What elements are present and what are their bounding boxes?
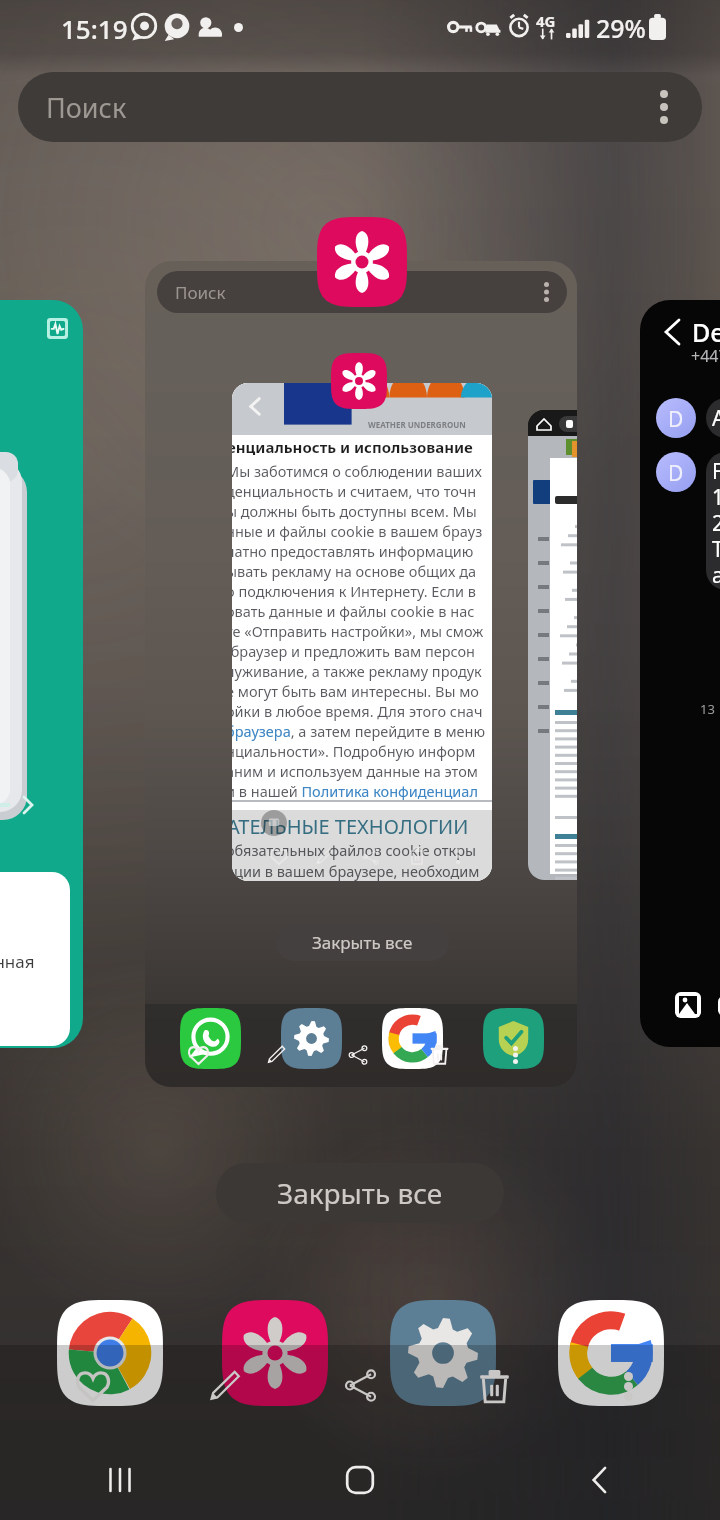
staticText: о подключения к Интернету. Если в (232, 581, 477, 601)
button[interactable]: Recent apps (0, 1440, 240, 1520)
staticText: ойки в любое время. Для этого снач (232, 701, 483, 721)
staticText: ывать рекламу на основе общих да (232, 561, 477, 581)
staticText: At (712, 404, 720, 433)
button[interactable]: Back (480, 1440, 720, 1520)
button[interactable]: More options (644, 87, 684, 127)
staticText: ации в вашем браузере, необходим (232, 861, 480, 881)
button[interactable]: Settings (390, 1300, 496, 1406)
staticText: браузера, а затем перейдите в меню (232, 721, 485, 741)
staticText: Закрыть все (312, 931, 413, 954)
staticText: +447 (691, 345, 720, 367)
button[interactable]: Google (558, 1300, 664, 1406)
staticText: Поиск (175, 281, 226, 304)
staticText: Dec (692, 315, 720, 349)
button[interactable]: Поиск (145, 261, 577, 1087)
staticText: Закрыть все (277, 1174, 443, 1212)
staticText: АТЕЛЬНЫЕ ТЕХНОЛОГИИ (232, 813, 469, 840)
button[interactable]: Gallery (222, 1300, 328, 1406)
staticText: Мы заботимся о соблюдении ваших (232, 461, 482, 481)
button[interactable]: Dec (640, 300, 720, 1047)
staticText: аним и используем данные на этом (232, 761, 478, 781)
staticText: нциальности». Подробную информ (232, 741, 476, 761)
button[interactable]: Закрыть все (216, 1163, 504, 1223)
staticText: енциальность и использование (232, 437, 473, 457)
button[interactable]: Chrome (57, 1300, 163, 1406)
staticText: е могут быть вам интересны. Вы мо (232, 681, 479, 701)
staticText: 15:19 (61, 11, 128, 46)
staticText: латно предоставлять информацию (232, 541, 474, 561)
staticText: D (668, 459, 684, 488)
staticText: нные и файлы cookie в вашем брауз (232, 521, 483, 541)
staticText: Fro 1 o 21 To an (712, 457, 720, 590)
staticText: 29% (596, 11, 646, 45)
staticText: D (668, 405, 684, 434)
staticText: овать данные и файлы cookie в нас (232, 601, 475, 621)
staticText: 4G (536, 11, 556, 31)
staticText: обязательных файлов cookie откры (232, 840, 477, 860)
button[interactable]: Gallery (317, 217, 407, 307)
staticText: Постоянная защита (0, 950, 35, 999)
staticText: 13 (700, 700, 715, 718)
staticText: Поиск (46, 89, 127, 126)
staticText: те «Отправить настройки», мы смож (232, 621, 484, 641)
button[interactable]: Home (240, 1440, 480, 1520)
staticText: -браузер и предложить вам персон (232, 641, 475, 661)
staticText: ы должны быть доступны всем. Мы (232, 501, 477, 521)
staticText: и в нашей Политика конфиденциал (232, 781, 478, 801)
button[interactable]: Поиск (18, 72, 702, 142)
staticText: денциальность и считаем, что точн (232, 481, 477, 501)
staticText: луживание, а также рекламу продук (232, 661, 482, 681)
staticText: WEATHER UNDERGROUN (368, 419, 466, 430)
button[interactable]: Постоянная защита (0, 300, 83, 1048)
